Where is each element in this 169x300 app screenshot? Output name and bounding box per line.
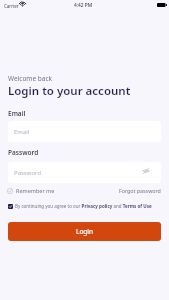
button[interactable]: Remember me <box>7 187 55 194</box>
staticText: Login <box>76 227 94 236</box>
staticText: Carrier <box>4 3 19 9</box>
staticText: By continuing you agree to our Privacy p… <box>15 203 152 209</box>
staticText: Welcome back <box>8 74 52 83</box>
staticText: 4:42 PM <box>74 2 93 9</box>
staticText: Password <box>8 148 39 157</box>
staticText: Remember me <box>16 187 55 194</box>
staticText: Email <box>8 109 26 118</box>
button[interactable]: Show password <box>142 167 150 175</box>
staticText: Password <box>14 169 42 177</box>
button[interactable]: Forgot password <box>119 187 161 194</box>
button[interactable]: Email <box>8 121 161 142</box>
button[interactable]: Agree to terms <box>8 204 13 209</box>
button[interactable]: Login <box>8 222 161 241</box>
staticText: Login to your account <box>8 83 131 99</box>
button[interactable]: Password <box>8 162 161 183</box>
staticText: Email <box>14 128 30 136</box>
